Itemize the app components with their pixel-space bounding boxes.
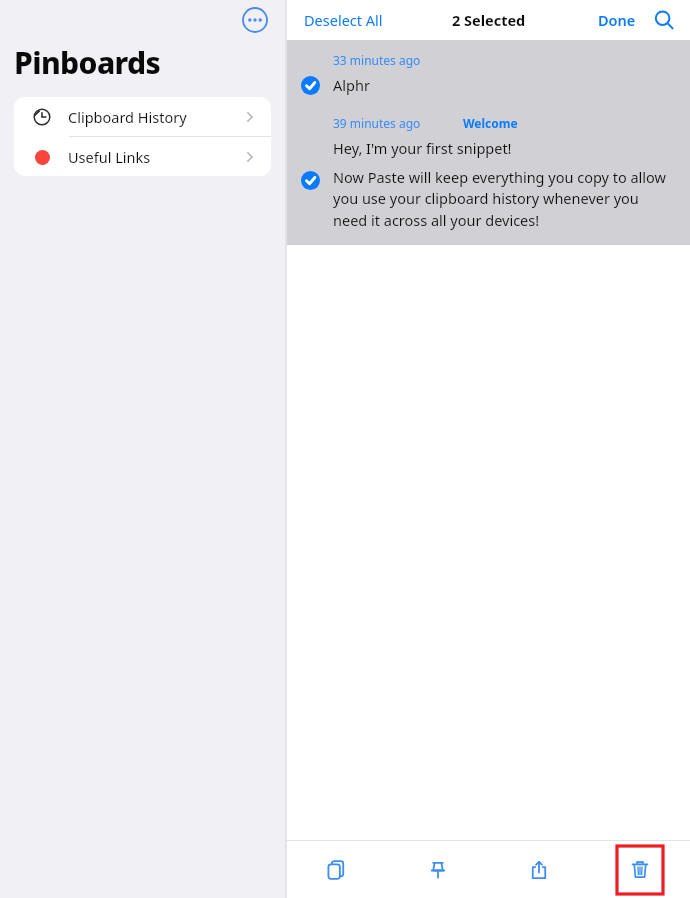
button[interactable]: Deselect All	[304, 10, 383, 30]
staticText: Done	[598, 10, 636, 30]
button[interactable]: Done	[598, 10, 636, 30]
staticText: Clipboard History	[68, 107, 187, 127]
button[interactable]: Search	[652, 8, 676, 32]
staticText: 2 Selected	[452, 10, 526, 30]
staticText: 39 minutes ago	[333, 115, 421, 131]
button[interactable]: Delete	[617, 846, 663, 894]
button[interactable]: Share	[488, 841, 589, 898]
staticText: Alphr	[333, 75, 370, 95]
staticText: Useful Links	[68, 147, 151, 167]
staticText: Deselect All	[304, 10, 383, 30]
button[interactable]: More options	[242, 7, 268, 33]
staticText: 33 minutes ago	[333, 52, 421, 68]
staticText: Hey, I'm your first snippet!	[333, 138, 512, 158]
staticText: Pinboards	[14, 42, 161, 83]
staticText: Now Paste will keep everything you copy …	[333, 167, 676, 231]
button[interactable]: Useful Links	[14, 137, 271, 176]
button[interactable]: Copy	[287, 841, 387, 898]
button[interactable]: Clipboard History	[14, 97, 271, 136]
staticText: Welcome	[463, 115, 518, 131]
button[interactable]: Unpin	[387, 841, 488, 898]
